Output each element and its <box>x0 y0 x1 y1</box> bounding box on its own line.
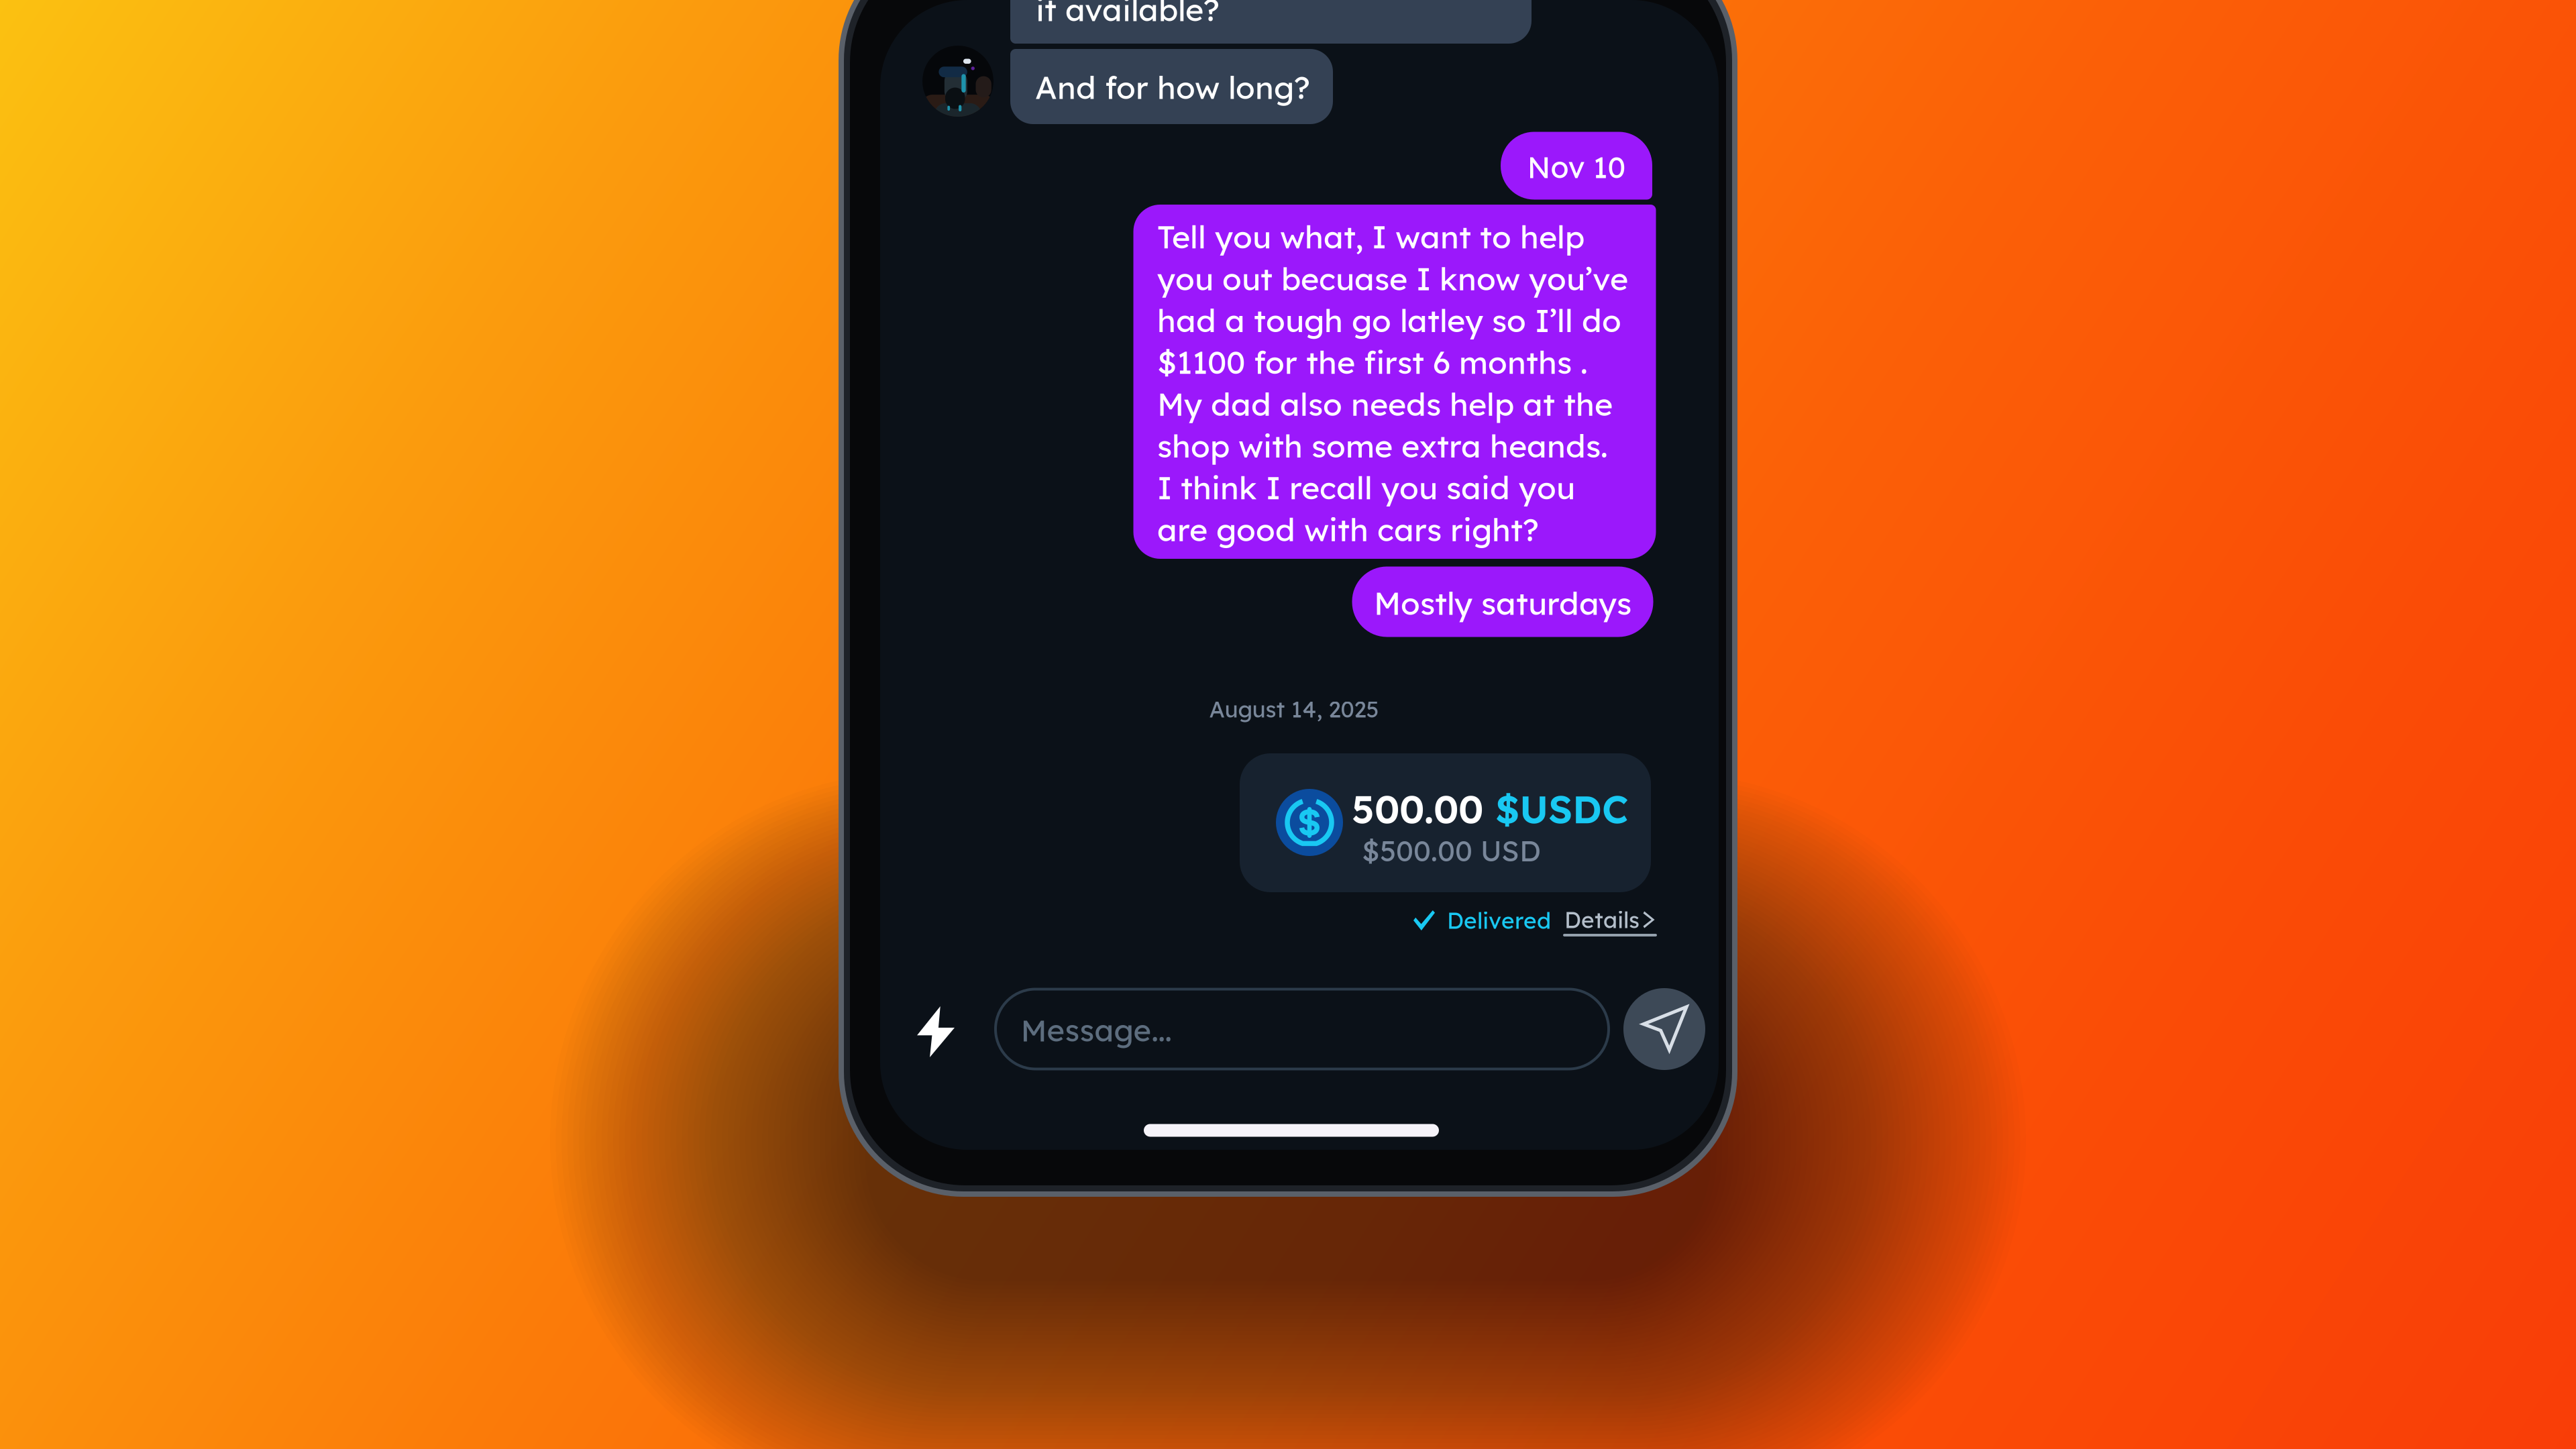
staticText: Tell you what, I want to help you out be… <box>1157 217 1628 549</box>
staticText: $USDC <box>1495 785 1629 833</box>
button[interactable]: Details <box>1563 902 1657 941</box>
staticText: it available? <box>1036 0 1220 29</box>
button[interactable]: Quick actions <box>898 988 973 1075</box>
button[interactable]: Send <box>1623 988 1705 1070</box>
button[interactable]: Message... <box>996 989 1609 1069</box>
staticText: And for how long? <box>1035 68 1310 107</box>
staticText: Mostly saturdays <box>1374 583 1631 623</box>
staticText: $500.00 USD <box>1362 833 1541 868</box>
staticText: Details <box>1564 906 1640 934</box>
staticText: Message... <box>1021 1011 1172 1049</box>
staticText: August 14, 2025 <box>1209 695 1379 723</box>
button[interactable]: 500.00 <box>1240 753 1651 892</box>
staticText: 500.00 <box>1352 785 1495 833</box>
staticText: Delivered <box>1447 906 1551 934</box>
staticText: Nov 10 <box>1527 149 1626 185</box>
